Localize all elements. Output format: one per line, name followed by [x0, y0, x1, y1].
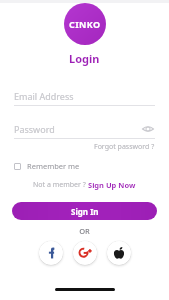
- staticText: Sign Up Now: [88, 180, 136, 190]
- staticText: Sign In: [71, 206, 99, 217]
- button[interactable]: Password: [14, 118, 155, 139]
- button[interactable]: Sign Up Now: [88, 180, 136, 190]
- button[interactable]: Sign in with Facebook: [39, 241, 63, 265]
- staticText: Forgot password ?: [94, 142, 155, 152]
- button[interactable]: Show password: [141, 122, 155, 136]
- staticText: Email Address: [14, 90, 74, 102]
- staticText: CINKO: [69, 18, 101, 30]
- staticText: Remember me: [27, 161, 80, 171]
- button[interactable]: Remember me: [14, 161, 80, 171]
- button[interactable]: Sign In: [12, 202, 157, 220]
- staticText: Not a member ?: [33, 180, 88, 190]
- button[interactable]: Sign in with Apple: [107, 241, 131, 265]
- button[interactable]: Sign in with Google: [73, 241, 97, 265]
- staticText: Password: [14, 123, 55, 135]
- button[interactable]: Forgot password ?: [94, 142, 155, 152]
- staticText: OR: [79, 226, 90, 236]
- staticText: Login: [69, 51, 100, 66]
- button[interactable]: Email Address: [14, 85, 155, 106]
